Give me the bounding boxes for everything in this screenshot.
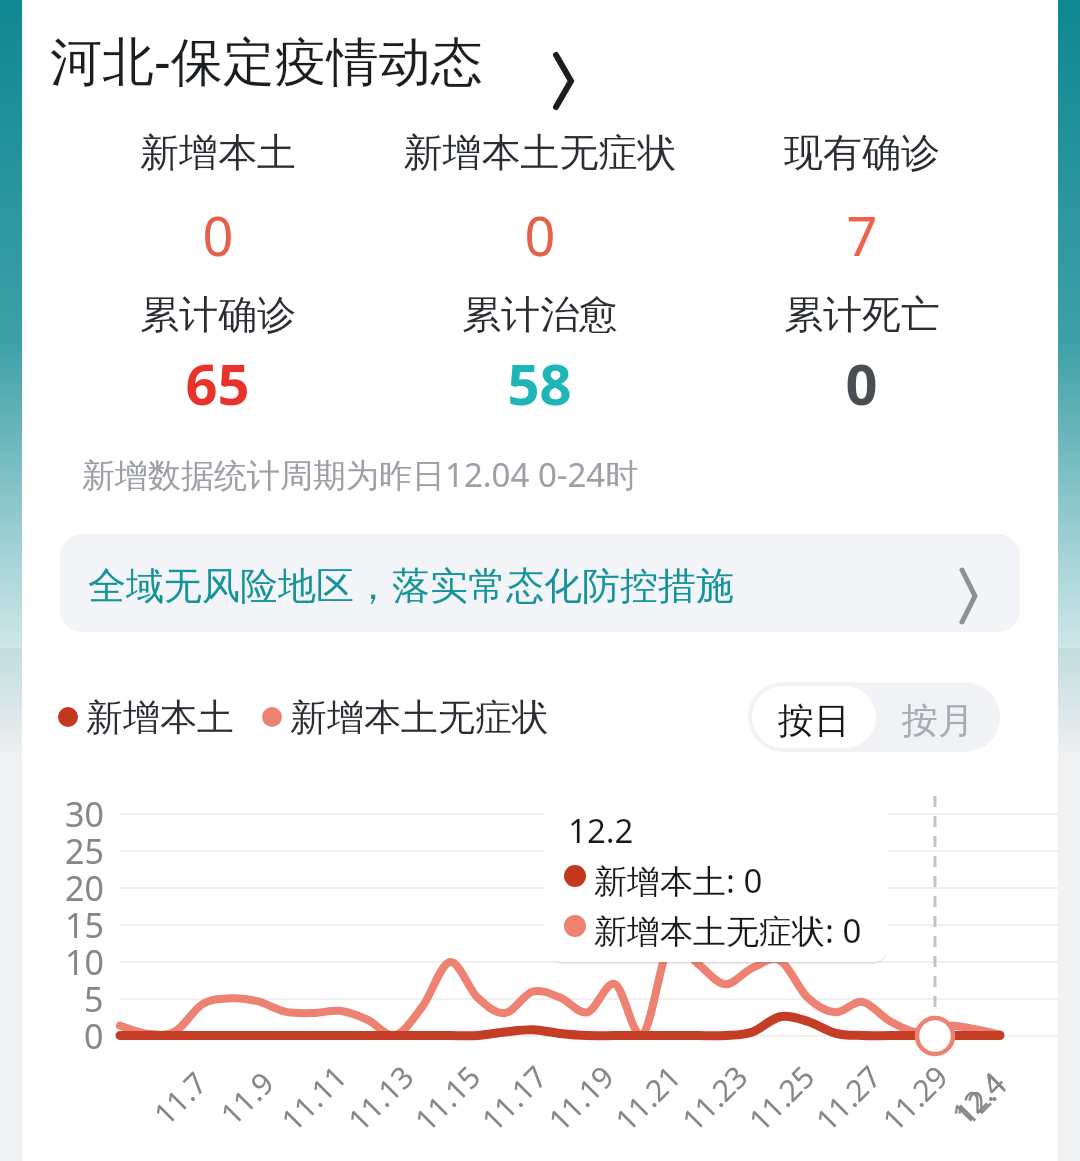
button[interactable]: 查看风险地区详情	[950, 562, 1000, 612]
button[interactable]	[876, 686, 1000, 748]
button[interactable]	[50, 18, 590, 88]
button[interactable]	[704, 118, 1020, 258]
button[interactable]	[60, 280, 376, 420]
button[interactable]	[752, 686, 876, 748]
button[interactable]	[382, 280, 698, 420]
button[interactable]	[382, 118, 698, 258]
button[interactable]	[704, 280, 1020, 420]
button[interactable]	[60, 534, 1020, 632]
button[interactable]	[60, 118, 376, 258]
